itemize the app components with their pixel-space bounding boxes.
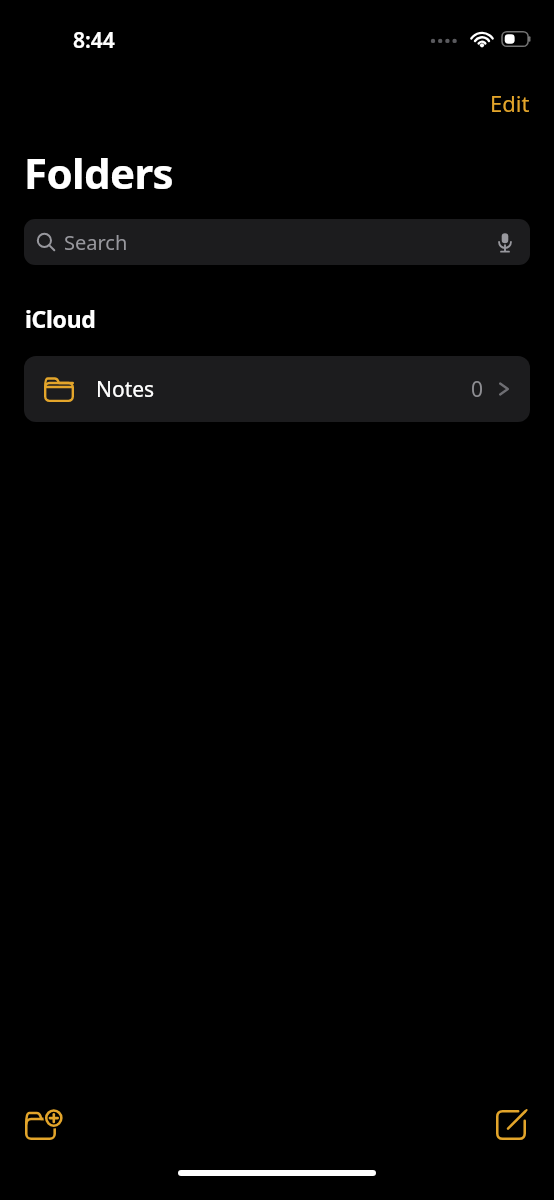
staticText: Edit: [490, 88, 530, 118]
button[interactable]: Dictate: [492, 229, 518, 255]
staticText: Notes: [96, 375, 471, 404]
staticText: 0: [471, 375, 484, 404]
staticText: iCloud: [25, 303, 96, 334]
button[interactable]: New Folder: [14, 1096, 72, 1154]
button[interactable]: Notes: [24, 356, 530, 422]
staticText: Search: [64, 229, 492, 256]
staticText: 8:44: [73, 26, 115, 55]
button[interactable]: New Note: [482, 1096, 540, 1154]
button[interactable]: Edit: [478, 82, 542, 124]
staticText: Folders: [24, 144, 174, 201]
button[interactable]: Search: [24, 219, 530, 265]
